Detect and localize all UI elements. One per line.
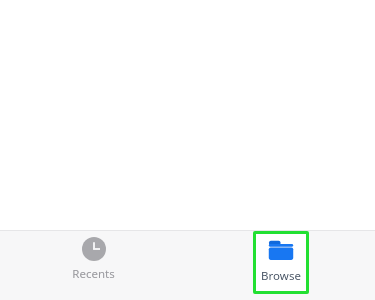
staticText: Browse [261,268,301,284]
staticText: Recents [72,266,115,282]
other: Recents [82,237,106,261]
button[interactable]: Recents [0,231,187,300]
button[interactable]: Browse [256,234,306,291]
other: Browse [268,237,294,263]
